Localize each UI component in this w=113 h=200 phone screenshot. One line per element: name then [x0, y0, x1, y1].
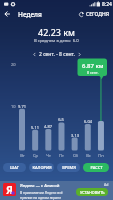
staticText: КАЛОРИЯ: [32, 165, 52, 170]
staticText: В приложении Яндекс всё: [20, 190, 63, 195]
button[interactable]: Back: [2, 9, 12, 19]
staticText: 6.04: [84, 119, 92, 124]
staticText: 42.23 км: [38, 26, 76, 38]
staticText: ШАГ: [10, 165, 19, 170]
staticText: Вс: [86, 153, 91, 158]
staticText: Вт: [20, 153, 25, 158]
staticText: нужное на одном экране: [20, 195, 62, 200]
staticText: Яндекс — с Алисой: [20, 183, 60, 189]
button[interactable]: 6.87 км: [78, 59, 108, 75]
staticText: Сб: [73, 153, 78, 158]
staticText: СЕГОДНЯ: [86, 11, 110, 18]
button[interactable]: Previous week: [32, 51, 82, 58]
staticText: 6.87 км: [82, 62, 104, 70]
staticText: Я: [6, 183, 13, 196]
staticText: 3.13: [71, 133, 79, 138]
staticText: 2 сент. - 8 сент.: [39, 51, 75, 58]
staticText: Ad: [104, 182, 109, 187]
staticText: Пн: [98, 153, 104, 158]
staticText: В среднем в день: 6.0: [34, 38, 79, 44]
staticText: 8:24: [102, 1, 112, 8]
staticText: Пт: [59, 153, 64, 158]
button[interactable]: РАССТ: [83, 163, 109, 172]
button[interactable]: УСТАНОВИТЬ: [76, 188, 108, 196]
button[interactable]: ВРЕМЯ: [57, 163, 80, 172]
button[interactable]: СЕГОДНЯ: [79, 11, 110, 18]
staticText: 5.11: [31, 125, 39, 130]
other: Next week: [77, 52, 82, 57]
staticText: 20: [11, 62, 16, 67]
staticText: 6.5: [58, 117, 64, 122]
staticText: ВРЕМЯ: [62, 165, 76, 170]
staticText: Чт: [46, 153, 51, 158]
staticText: 9.71: [18, 104, 26, 109]
staticText: Неделя: [18, 10, 42, 19]
staticText: Ср: [33, 153, 38, 158]
button[interactable]: КАЛОРИЯ: [29, 163, 54, 172]
button[interactable]: ШАГ: [3, 163, 26, 172]
staticText: РАССТ: [90, 165, 103, 170]
button[interactable]: Я: [0, 181, 113, 200]
staticText: 10: [11, 104, 16, 109]
other: Previous week: [32, 52, 37, 57]
staticText: 8 сент.: [87, 70, 99, 75]
staticText: 4.87: [44, 124, 52, 129]
staticText: УСТАНОВИТЬ: [80, 190, 105, 195]
